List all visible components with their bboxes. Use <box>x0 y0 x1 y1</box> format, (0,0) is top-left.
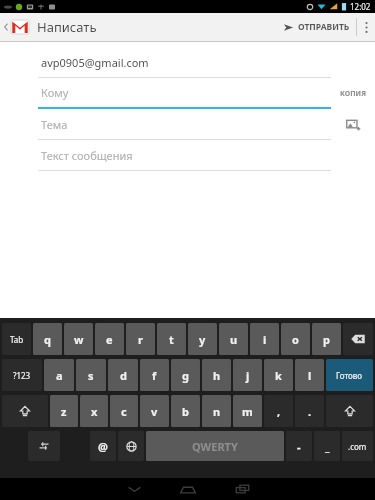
button[interactable]: z <box>50 395 78 427</box>
staticText: i <box>263 332 267 347</box>
button[interactable]: x <box>80 395 108 427</box>
staticText: ?123 <box>13 370 31 381</box>
button[interactable]: Тема <box>38 109 331 140</box>
staticText: e <box>106 332 113 347</box>
staticText: r <box>138 332 143 347</box>
button[interactable]: p <box>312 323 341 355</box>
staticText: q <box>44 332 51 347</box>
button[interactable]: Недавние приложения <box>215 478 269 500</box>
staticText: h <box>213 368 221 383</box>
staticText: g <box>182 368 189 383</box>
button[interactable]: q <box>33 323 62 355</box>
button[interactable]: t <box>157 323 186 355</box>
staticText: l <box>308 368 312 383</box>
button[interactable]: _ <box>314 431 340 461</box>
button[interactable]: g <box>171 359 200 391</box>
button[interactable]: ?123 <box>2 359 42 391</box>
staticText: . <box>308 404 312 419</box>
button[interactable]: avp0905@gmail.com <box>38 47 331 78</box>
button[interactable]: .com <box>342 431 373 461</box>
button[interactable]: u <box>219 323 248 355</box>
staticText: c <box>121 404 127 419</box>
staticText: z <box>61 404 67 419</box>
button[interactable]: w <box>64 323 93 355</box>
button[interactable]: Tab <box>2 323 31 355</box>
button[interactable]: КОПИЯ <box>331 78 375 109</box>
staticText: s <box>88 368 94 383</box>
button[interactable]: f <box>140 359 169 391</box>
staticText: v <box>151 404 158 419</box>
button[interactable]: - <box>286 431 312 461</box>
staticText: , <box>277 404 281 419</box>
button[interactable]: s <box>76 359 106 391</box>
button[interactable]: , <box>264 395 293 427</box>
button[interactable]: Дополнительно <box>357 13 375 41</box>
staticText: 12:02 <box>350 1 371 12</box>
button[interactable]: y <box>188 323 217 355</box>
staticText: b <box>182 404 189 419</box>
staticText: f <box>152 368 157 383</box>
staticText: Тема <box>41 117 68 132</box>
staticText: t <box>169 332 174 347</box>
button[interactable]: globe <box>118 431 144 461</box>
button[interactable]: Текст сообщения <box>38 140 331 171</box>
staticText: x <box>91 404 98 419</box>
button[interactable]: m <box>233 395 262 427</box>
staticText: _ <box>325 439 330 454</box>
button[interactable]: l <box>295 359 324 391</box>
button[interactable]: Кому <box>38 78 331 109</box>
button[interactable]: c <box>110 395 138 427</box>
button[interactable]: b <box>171 395 200 427</box>
staticText: Написать <box>37 18 97 36</box>
staticText: k <box>275 368 282 383</box>
staticText: ОТПРАВИТЬ <box>298 21 350 33</box>
staticText: o <box>292 332 299 347</box>
button[interactable]: Назад <box>107 478 161 500</box>
staticText: avp0905@gmail.com <box>41 55 149 70</box>
staticText: n <box>213 404 221 419</box>
staticText: p <box>323 332 330 347</box>
button[interactable]: settings <box>28 431 60 461</box>
button[interactable]: i <box>250 323 279 355</box>
button[interactable]: shift <box>2 395 48 427</box>
button[interactable]: o <box>281 323 310 355</box>
button[interactable]: j <box>233 359 262 391</box>
button[interactable]: backspace <box>343 323 373 355</box>
button[interactable]: e <box>95 323 124 355</box>
button[interactable]: k <box>264 359 293 391</box>
staticText: j <box>246 368 250 383</box>
staticText: u <box>230 332 238 347</box>
button[interactable]: Написать <box>0 18 103 36</box>
staticText: y <box>199 332 206 347</box>
staticText: w <box>74 332 84 347</box>
button[interactable]: QWERTY <box>146 431 284 461</box>
staticText: d <box>120 368 127 383</box>
button[interactable]: h <box>202 359 231 391</box>
staticText: QWERTY <box>192 439 238 454</box>
staticText: a <box>56 368 63 383</box>
button[interactable]: Прикрепить изображение <box>331 109 375 140</box>
button[interactable]: Готово <box>326 359 373 391</box>
button[interactable]: Главный экран <box>161 478 215 500</box>
staticText: @ <box>98 439 108 454</box>
staticText: Готово <box>336 370 363 381</box>
staticText: Tab <box>10 334 24 345</box>
button[interactable]: ОТПРАВИТЬ <box>277 17 356 37</box>
staticText: Кому <box>41 85 69 100</box>
staticText: Текст сообщения <box>41 148 133 163</box>
button[interactable]: d <box>108 359 138 391</box>
button[interactable]: v <box>140 395 169 427</box>
button[interactable]: shift <box>326 395 373 427</box>
staticText: m <box>242 404 253 419</box>
staticText: .com <box>348 441 367 452</box>
button[interactable]: . <box>295 395 324 427</box>
button[interactable]: n <box>202 395 231 427</box>
button[interactable]: @ <box>90 431 116 461</box>
button[interactable]: a <box>44 359 74 391</box>
button[interactable]: r <box>126 323 155 355</box>
staticText: - <box>297 439 301 454</box>
staticText: КОПИЯ <box>340 89 366 99</box>
